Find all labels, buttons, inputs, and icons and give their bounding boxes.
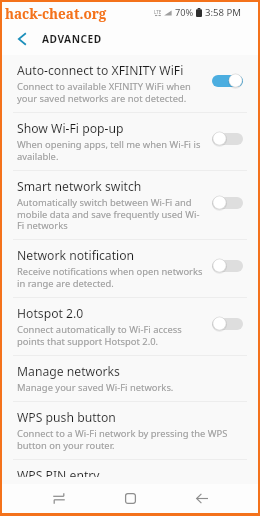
staticText: Receive notifications when open networks… <box>17 265 204 290</box>
staticText: Hotspot 2.0 <box>17 305 84 322</box>
button[interactable]: Smart network switch <box>2 171 258 239</box>
staticText: LTE <box>154 9 162 15</box>
button[interactable]: Home <box>116 484 145 513</box>
button[interactable]: Show Wi-Fi pop-up <box>2 113 258 170</box>
button[interactable]: WPS push button <box>2 402 258 459</box>
button[interactable]: Navigate up <box>2 23 41 55</box>
button[interactable]: Switch on <box>212 73 243 88</box>
staticText: Manage your saved Wi-Fi networks. <box>17 381 174 394</box>
staticText: Manage networks <box>17 363 120 380</box>
staticText: When opening apps, tell me when Wi-Fi is… <box>17 138 204 163</box>
button[interactable]: Recent apps <box>44 484 73 513</box>
staticText: Connect to a Wi-Fi network by pressing t… <box>17 427 231 452</box>
button[interactable]: Switch off <box>212 316 243 331</box>
staticText: WPS push button <box>17 409 116 426</box>
staticText: hack-cheat.org <box>5 5 107 23</box>
button[interactable]: Switch off <box>212 195 243 210</box>
staticText: Automatically switch between Wi-Fi and m… <box>17 196 204 232</box>
button[interactable]: Back <box>187 484 216 513</box>
staticText: ADVANCED <box>42 32 102 46</box>
button[interactable]: Switch off <box>212 131 243 146</box>
staticText: Show Wi-Fi pop-up <box>17 120 124 137</box>
button[interactable]: Hotspot 2.0 <box>2 298 258 355</box>
staticText: Auto-connect to XFINITY WiFi <box>17 62 184 79</box>
button[interactable]: Auto-connect to XFINITY WiFi <box>2 55 258 112</box>
staticText: Smart network switch <box>17 178 142 195</box>
staticText: WPS PIN entry <box>17 467 100 477</box>
staticText: Connect to available XFINITY WiFi when y… <box>17 80 204 105</box>
button[interactable]: Switch off <box>212 258 243 273</box>
button[interactable]: Manage networks <box>2 356 258 401</box>
staticText: Network notification <box>17 247 135 264</box>
staticText: 70% <box>175 6 194 19</box>
staticText: Connect automatically to Wi-Fi access po… <box>17 323 204 348</box>
button[interactable]: WPS PIN entry <box>2 460 258 484</box>
staticText: 3:58 PM <box>205 6 242 19</box>
button[interactable]: Network notification <box>2 240 258 297</box>
